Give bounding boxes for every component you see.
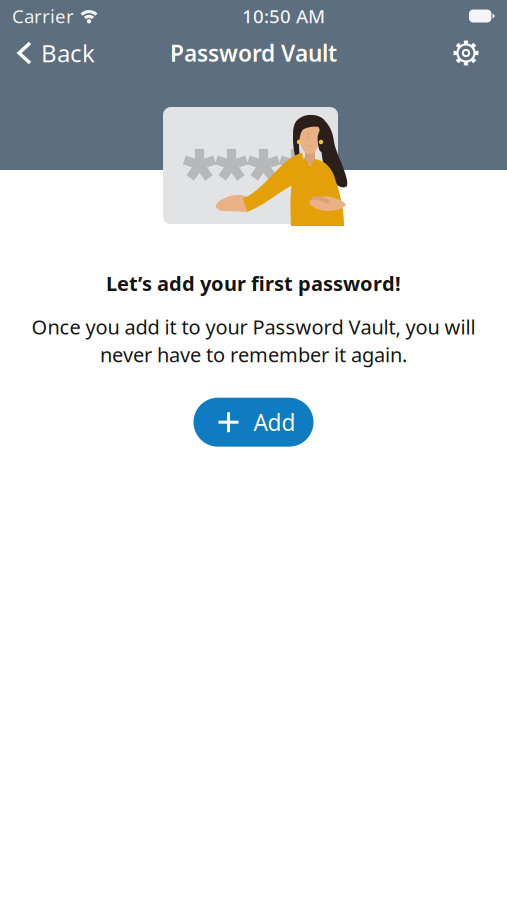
staticText: Let’s add your first password! [106, 270, 401, 297]
button[interactable]: Add [193, 398, 313, 447]
button[interactable]: Settings [443, 30, 507, 76]
staticText: Add [253, 407, 295, 437]
staticText: Back [41, 37, 95, 69]
staticText: Carrier [12, 4, 74, 28]
button[interactable]: Back [0, 30, 105, 76]
staticText: 10:50 AM [242, 4, 325, 28]
staticText: Password Vault [170, 38, 337, 68]
staticText: Once you add it to your Password Vault, … [31, 314, 475, 340]
staticText: never have to remember it again. [100, 341, 407, 368]
